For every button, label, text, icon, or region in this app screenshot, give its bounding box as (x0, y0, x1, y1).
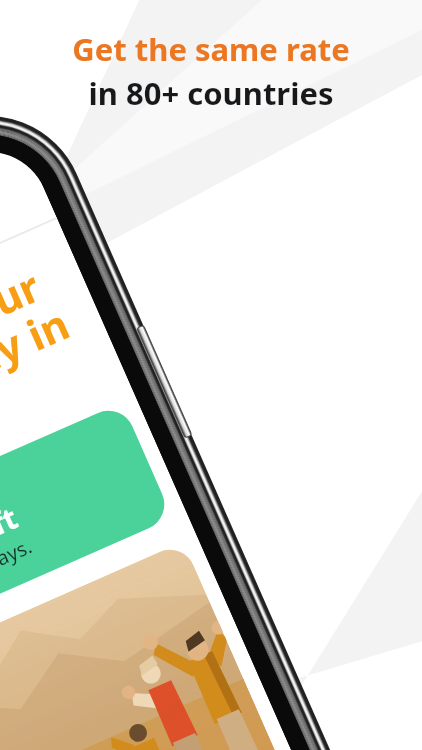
staticText: in 80+ countries (88, 72, 334, 114)
staticText: Get the same rate (72, 28, 350, 70)
